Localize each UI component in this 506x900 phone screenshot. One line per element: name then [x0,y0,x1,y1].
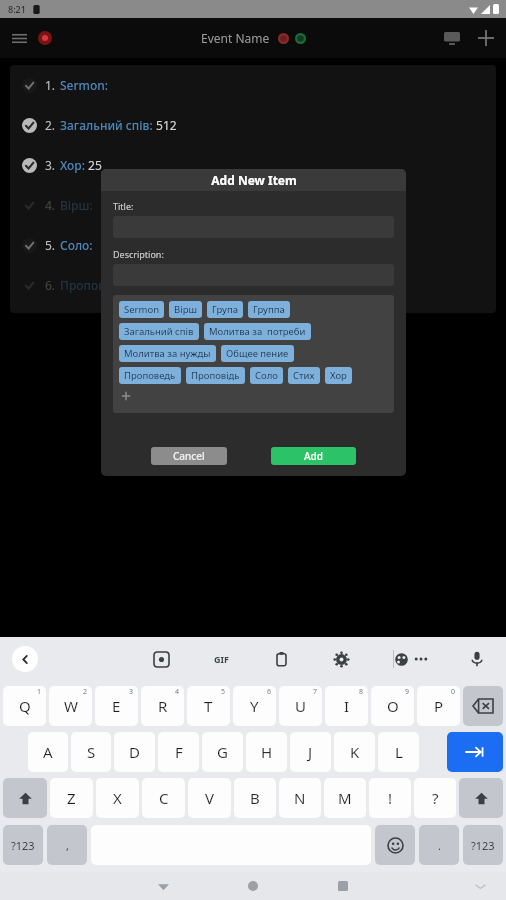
button[interactable]: K [334,732,375,772]
button[interactable]: Add tag [119,389,133,403]
button[interactable]: Соло [250,367,283,384]
button[interactable]: Present [438,24,466,52]
button[interactable]: M [324,778,366,818]
button[interactable]: 3. [10,145,496,185]
button[interactable]: P [417,686,460,726]
staticText: R [158,696,168,716]
button[interactable]: ! [369,778,411,818]
button[interactable]: Общее пение [221,345,294,362]
button[interactable]: ? [414,778,456,818]
button[interactable]: Settings [328,646,354,672]
button[interactable]: J [290,732,331,772]
button[interactable]: C [142,778,185,818]
button[interactable]: Back [12,646,38,672]
button[interactable]: Sermon [119,301,164,318]
staticText: 5 [221,687,226,697]
staticText: 4 [175,687,180,697]
button[interactable]: Загальний спів [119,323,199,340]
button[interactable]: B [234,778,276,818]
button[interactable]: G [202,732,243,772]
button[interactable]: I [325,686,368,726]
button[interactable]: Група [207,301,243,318]
staticText: G [217,742,228,762]
button[interactable]: Backspace [463,686,503,726]
button[interactable]: ?123 [463,825,503,865]
button[interactable]: , [47,825,87,865]
staticText: V [205,788,215,808]
button[interactable]: 5. [10,225,496,265]
button[interactable]: Группа [248,301,290,318]
button[interactable]: More [408,646,434,672]
button[interactable]: Home [241,874,265,898]
button[interactable]: GIF [208,646,234,672]
button[interactable]: Проповедь [119,367,181,384]
button[interactable]: 4. [10,185,496,225]
button[interactable]: Cancel [151,447,227,465]
button[interactable]: Стих [288,367,320,384]
button[interactable]: O [371,686,414,726]
button[interactable]: Recents [331,874,355,898]
button[interactable]: V [188,778,231,818]
staticText: 8:21 [8,3,26,15]
button[interactable]: Menu [6,25,32,51]
staticText: 4. [45,197,56,213]
button[interactable]: Stickers [148,646,174,672]
button[interactable]: N [279,778,321,818]
button[interactable]: Хор [325,367,352,384]
button[interactable]: A [28,732,68,772]
button[interactable]: Молитва за нужды [119,345,216,362]
button[interactable]: Record [32,25,58,51]
button[interactable]: Y [233,686,276,726]
button[interactable]: Shift [459,778,503,818]
staticText: F [175,742,183,762]
staticText: Група [212,303,238,316]
button[interactable]: U [279,686,322,726]
staticText: P [434,696,444,716]
button[interactable]: Q [3,686,46,726]
button[interactable]: Voice input [464,646,490,672]
button[interactable]: Clipboard [268,646,294,672]
staticText: T [204,696,213,716]
staticText: E [112,696,121,716]
button[interactable]: W [49,686,92,726]
staticText: 3. [45,157,56,173]
staticText: A [43,742,53,762]
button[interactable]: F [158,732,199,772]
button[interactable]: 6. [10,265,496,305]
button[interactable]: S [71,732,111,772]
button[interactable]: Shift [3,778,47,818]
button[interactable]: Молитва за потреби [204,323,311,340]
button[interactable]: Вірш [169,301,202,318]
staticText: Add New Item [211,172,297,188]
staticText: M [338,788,352,808]
staticText: 25 [85,157,102,173]
button[interactable]: T [187,686,230,726]
button[interactable]: Back [151,874,175,898]
button[interactable]: L [378,732,419,772]
button[interactable]: D [114,732,155,772]
button[interactable]: R [141,686,184,726]
staticText: K [350,742,360,762]
staticText: 2 [83,687,88,697]
button[interactable]: . [419,825,459,865]
button[interactable]: Emoji [375,825,415,865]
button[interactable]: Z [50,778,93,818]
staticText: L [395,742,403,762]
button[interactable]: Add [271,447,356,465]
button[interactable]: 1. [10,65,496,105]
button[interactable]: Проповідь [186,367,245,384]
button[interactable]: E [95,686,138,726]
staticText: 0 [451,687,456,697]
button[interactable]: X [96,778,139,818]
staticText: Пропов [60,277,106,293]
button[interactable]: ?123 [3,825,43,865]
button[interactable]: Tab [447,732,503,772]
button[interactable]: 2. [10,105,496,145]
staticText: 512 [153,117,177,133]
button[interactable]: H [246,732,287,772]
button[interactable]: Add [472,24,500,52]
button[interactable]: Theme [388,646,414,672]
